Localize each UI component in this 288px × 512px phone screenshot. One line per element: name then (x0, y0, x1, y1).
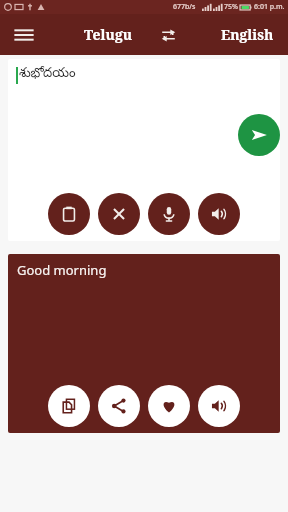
staticText: 6:01 p.m. (254, 2, 285, 12)
button[interactable]: Telugu (78, 21, 139, 48)
button[interactable]: Clear (98, 193, 140, 235)
button[interactable]: Listen (198, 385, 240, 427)
button[interactable]: Swap languages (155, 22, 181, 48)
button[interactable]: English (215, 21, 280, 48)
staticText: Good morning (17, 261, 107, 279)
staticText: శుభోదయం (19, 66, 76, 84)
button[interactable]: Speak (148, 193, 190, 235)
staticText: English (221, 25, 274, 44)
button[interactable]: Menu (8, 19, 40, 51)
button[interactable]: Copy (48, 385, 90, 427)
button[interactable]: Paste (48, 193, 90, 235)
button[interactable]: Favorite (148, 385, 190, 427)
staticText: 75% (224, 2, 238, 12)
button[interactable]: Translate (238, 114, 280, 156)
button[interactable]: Listen (198, 193, 240, 235)
staticText: 677b/s (173, 2, 196, 12)
button[interactable]: Share (98, 385, 140, 427)
staticText: Telugu (84, 25, 133, 44)
